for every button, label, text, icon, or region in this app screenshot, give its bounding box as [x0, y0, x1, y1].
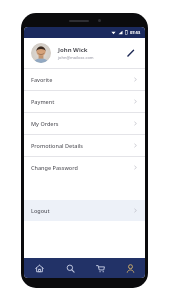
button[interactable]: My Orders — [24, 113, 145, 134]
button[interactable]: Logout — [24, 200, 145, 221]
button[interactable]: Edit profile — [124, 46, 138, 60]
staticText: john@mailxxx.com — [58, 55, 94, 60]
staticText: Favorite — [31, 76, 133, 83]
button[interactable]: Profile photo — [31, 43, 51, 63]
button[interactable]: Payment — [24, 91, 145, 112]
button[interactable]: Cart — [85, 258, 115, 278]
staticText: John Wick — [58, 46, 88, 54]
staticText: Logout — [31, 207, 133, 214]
staticText: 07:53 — [130, 30, 141, 35]
button[interactable]: Favorite — [24, 69, 145, 90]
staticText: Change Password — [31, 164, 133, 171]
button[interactable]: Change Password — [24, 157, 145, 178]
button[interactable]: Home — [24, 258, 55, 278]
button[interactable]: Profile — [115, 258, 145, 278]
staticText: Payment — [31, 98, 133, 105]
button[interactable]: Search — [55, 258, 85, 278]
staticText: My Orders — [31, 120, 133, 127]
staticText: Promotional Details — [31, 142, 133, 149]
button[interactable]: Promotional Details — [24, 135, 145, 156]
